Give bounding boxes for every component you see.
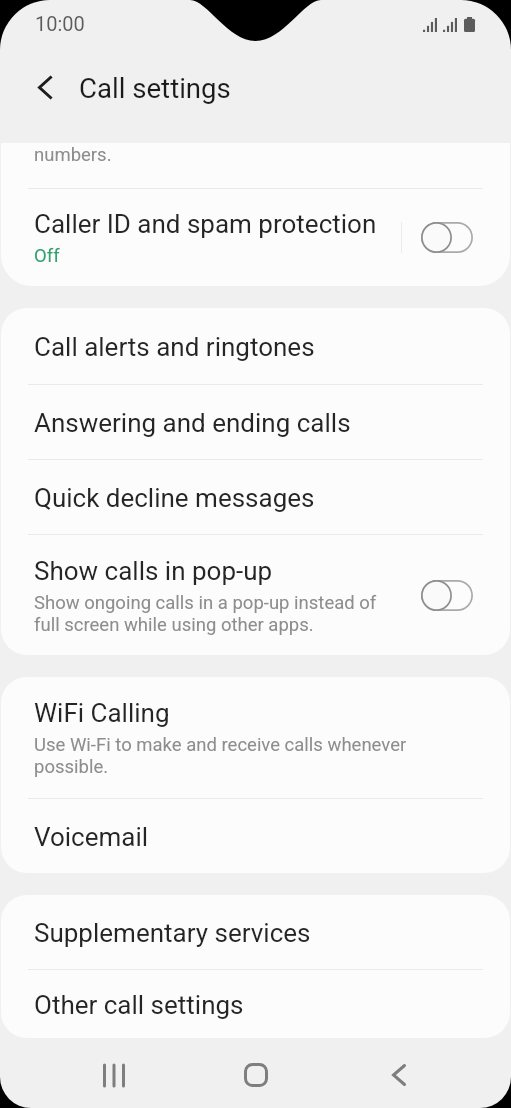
button[interactable]: Voicemail <box>1 799 510 873</box>
staticText: Quick decline messages <box>34 483 315 513</box>
button[interactable]: Toggle Show calls in pop-up <box>402 580 510 611</box>
staticText: Off <box>34 245 60 267</box>
button[interactable]: WiFi Calling <box>1 677 510 798</box>
staticText: Voicemail <box>34 822 149 852</box>
button[interactable]: Call alerts and ringtones <box>1 308 510 384</box>
staticText: Call settings <box>79 72 231 104</box>
button[interactable]: Caller ID and spam protection <box>1 189 510 286</box>
staticText: Caller ID and spam protection <box>34 209 377 239</box>
staticText: Show calls in pop-up <box>34 556 273 586</box>
staticText: 10:00 <box>35 12 85 35</box>
staticText: Use Wi-Fi to make and receive calls when… <box>34 734 482 777</box>
button[interactable]: Other call settings <box>1 970 510 1038</box>
button[interactable]: numbers. <box>1 143 510 188</box>
staticText: WiFi Calling <box>34 698 170 728</box>
staticText: Show ongoing calls in a pop-up instead o… <box>34 592 384 635</box>
button[interactable]: Recent apps <box>79 1040 149 1108</box>
staticText: Supplementary services <box>34 918 311 948</box>
button[interactable]: Home <box>221 1040 291 1108</box>
button[interactable]: Toggle Caller ID and spam protection <box>402 222 510 253</box>
button[interactable]: Back <box>364 1040 434 1108</box>
button[interactable]: Navigate up <box>10 52 80 122</box>
button[interactable]: Quick decline messages <box>1 460 510 534</box>
staticText: numbers. <box>34 144 112 166</box>
button[interactable]: Supplementary services <box>1 895 510 969</box>
staticText: Answering and ending calls <box>34 408 351 438</box>
button[interactable]: Answering and ending calls <box>1 385 510 459</box>
staticText: Call alerts and ringtones <box>34 332 315 362</box>
button[interactable]: Show calls in pop-up <box>1 535 510 655</box>
staticText: Other call settings <box>34 990 244 1020</box>
